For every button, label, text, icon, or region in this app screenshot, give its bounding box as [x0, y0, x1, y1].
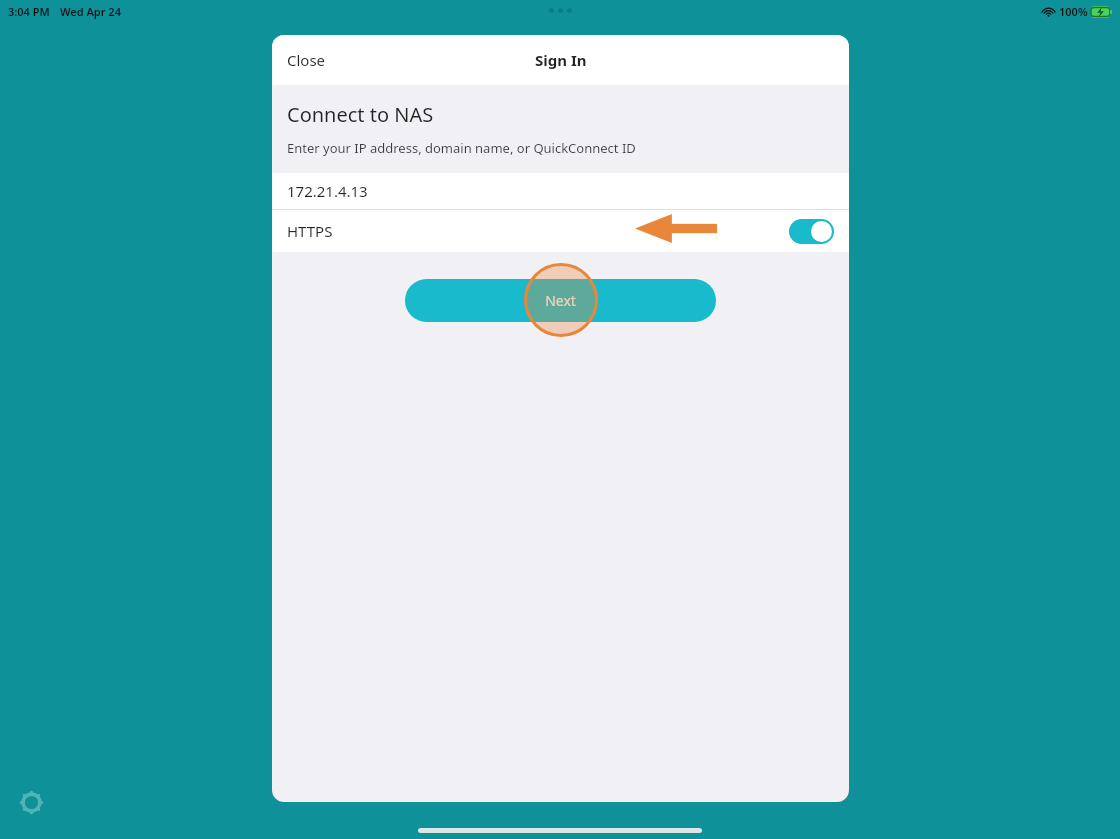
- staticText: 100%: [1059, 4, 1088, 19]
- button[interactable]: HTTPS: [272, 210, 849, 252]
- staticText: Wed Apr 24: [60, 4, 121, 19]
- button[interactable]: Close: [272, 42, 341, 78]
- staticText: Sign In: [535, 50, 587, 70]
- button[interactable]: 172.21.4.13: [272, 173, 849, 209]
- staticText: Close: [287, 50, 326, 70]
- button[interactable]: HTTPS toggle, on: [789, 219, 834, 244]
- staticText: Next: [545, 291, 576, 310]
- button[interactable]: Settings: [18, 789, 44, 815]
- staticText: 172.21.4.13: [287, 181, 368, 201]
- staticText: Enter your IP address, domain name, or Q…: [287, 139, 636, 157]
- button[interactable]: Next: [405, 279, 716, 322]
- staticText: HTTPS: [287, 221, 333, 241]
- staticText: Connect to NAS: [287, 101, 434, 128]
- staticText: 3:04 PM: [8, 4, 50, 19]
